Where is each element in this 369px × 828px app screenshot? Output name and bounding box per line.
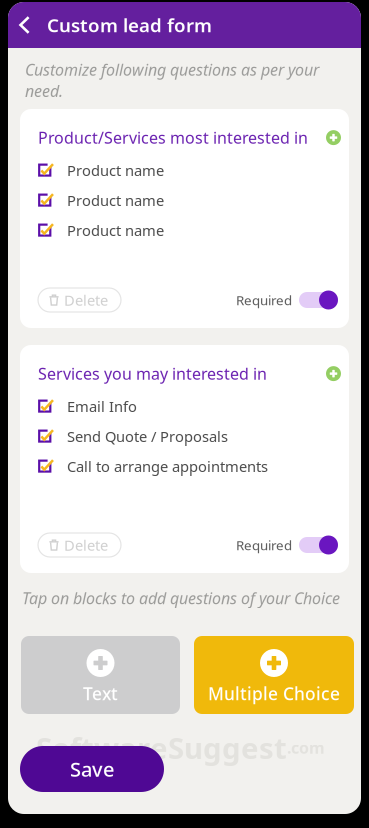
staticText: Product/Services most interested in xyxy=(38,127,308,148)
button[interactable]: Save xyxy=(20,746,164,792)
staticText: Multiple Choice xyxy=(208,682,340,705)
button[interactable]: Delete xyxy=(38,288,121,312)
button[interactable]: Delete xyxy=(38,533,121,557)
staticText: Custom lead form xyxy=(47,13,212,37)
button[interactable]: Text xyxy=(21,636,180,714)
button[interactable]: Add question xyxy=(326,130,341,145)
staticText: Product name xyxy=(67,160,164,180)
staticText: Customize following questions as per you… xyxy=(25,59,319,101)
staticText: Required xyxy=(236,536,292,554)
staticText: Product name xyxy=(67,220,164,240)
staticText: Required xyxy=(236,291,292,309)
button[interactable]: Required xyxy=(236,535,338,554)
staticText: SoftwareSuggest xyxy=(36,728,287,767)
button[interactable]: Back xyxy=(8,2,47,48)
staticText: Delete xyxy=(64,290,108,310)
staticText: Text xyxy=(83,682,118,705)
staticText: Call to arrange appointments xyxy=(67,456,268,476)
staticText: Email Info xyxy=(67,396,137,416)
staticText: .com xyxy=(287,737,325,758)
staticText: Tap on blocks to add questions of your C… xyxy=(22,587,340,609)
staticText: Product name xyxy=(67,190,164,210)
staticText: Save xyxy=(70,756,114,782)
button[interactable]: Add question xyxy=(326,366,341,381)
button[interactable]: Multiple Choice xyxy=(194,636,354,714)
button[interactable]: Required xyxy=(236,290,338,309)
staticText: Services you may interested in xyxy=(38,363,267,384)
staticText: Delete xyxy=(64,535,108,555)
staticText: Send Quote / Proposals xyxy=(67,426,228,446)
